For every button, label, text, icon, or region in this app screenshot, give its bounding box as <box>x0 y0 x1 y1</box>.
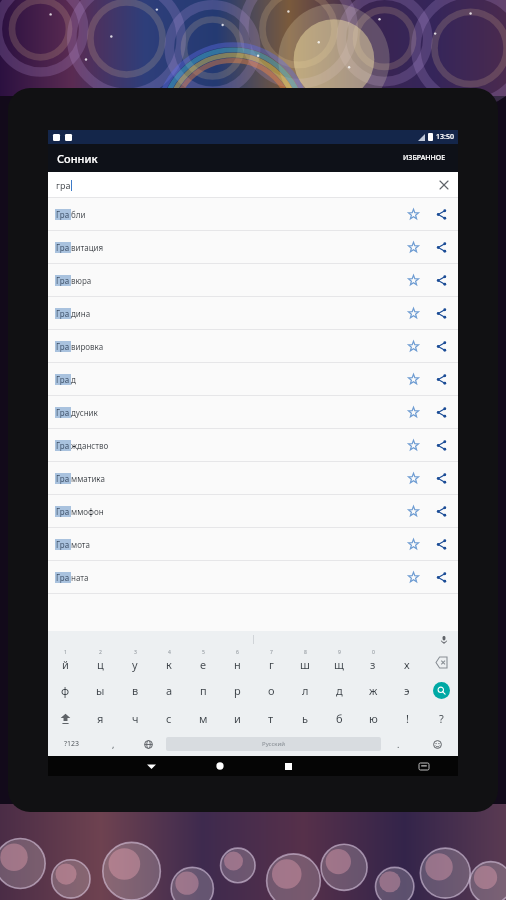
button[interactable]: л <box>288 676 322 704</box>
button[interactable]: Гра <box>48 462 458 495</box>
staticText: д <box>336 683 343 698</box>
button[interactable]: Add to favorites <box>402 302 424 324</box>
button[interactable]: ж <box>356 676 390 704</box>
button[interactable]: Share <box>430 401 452 423</box>
button[interactable]: Гра <box>48 429 458 462</box>
button[interactable]: т <box>254 704 288 732</box>
button[interactable]: Share <box>430 368 452 390</box>
button[interactable]: Share <box>430 203 452 225</box>
button[interactable]: Гра <box>48 198 458 231</box>
button[interactable]: Home <box>186 756 254 776</box>
button[interactable]: 3 <box>118 648 152 676</box>
button[interactable]: Share <box>430 335 452 357</box>
button[interactable]: Voice input <box>437 633 451 647</box>
button[interactable]: Add to favorites <box>402 203 424 225</box>
button[interactable]: . <box>381 732 416 756</box>
button[interactable]: п <box>186 676 220 704</box>
button[interactable]: Add to favorites <box>402 236 424 258</box>
button[interactable]: Add to favorites <box>402 566 424 588</box>
button[interactable]: Гра <box>48 231 458 264</box>
button[interactable]: 2 <box>83 648 118 676</box>
button[interactable]: ?123 <box>48 732 96 756</box>
button[interactable]: Change language <box>131 732 166 756</box>
button[interactable]: Add to favorites <box>402 269 424 291</box>
staticText: р <box>234 683 241 698</box>
button[interactable]: 1 <box>48 648 83 676</box>
button[interactable]: Add to favorites <box>402 401 424 423</box>
button[interactable]: э <box>390 676 424 704</box>
staticText: Сонник <box>57 151 98 166</box>
button[interactable]: Search <box>433 682 450 699</box>
button[interactable]: , <box>96 732 131 756</box>
button[interactable]: Emoji <box>416 732 458 756</box>
button[interactable]: Add to favorites <box>402 467 424 489</box>
button[interactable]: о <box>254 676 288 704</box>
staticText: . <box>397 738 400 750</box>
staticText: ф <box>61 683 70 698</box>
staticText: б <box>336 711 343 726</box>
button[interactable]: Гра <box>48 561 458 594</box>
button[interactable]: 5 <box>186 648 220 676</box>
button[interactable]: Share <box>430 269 452 291</box>
button[interactable]: ы <box>83 676 118 704</box>
staticText: Гра <box>56 374 70 385</box>
button[interactable]: и <box>220 704 254 732</box>
button[interactable]: ь <box>288 704 322 732</box>
staticText: ИЗБРАННОЕ <box>403 153 446 163</box>
button[interactable]: Share <box>430 467 452 489</box>
staticText: г <box>269 657 274 672</box>
button[interactable]: х <box>390 648 424 676</box>
button[interactable]: ч <box>118 704 152 732</box>
button[interactable]: Гра <box>48 396 458 429</box>
button[interactable]: Гра <box>48 495 458 528</box>
staticText: дусник <box>71 407 98 418</box>
button[interactable]: 0 <box>356 648 390 676</box>
button[interactable]: я <box>83 704 118 732</box>
button[interactable]: ! <box>390 704 424 732</box>
button[interactable]: Гра <box>48 297 458 330</box>
button[interactable]: 8 <box>288 648 322 676</box>
button[interactable]: Shift <box>48 704 83 732</box>
staticText: н <box>234 657 241 672</box>
staticText: 3 <box>134 649 137 656</box>
button[interactable]: Recents <box>254 756 322 776</box>
button[interactable]: 6 <box>220 648 254 676</box>
button[interactable]: Add to favorites <box>402 434 424 456</box>
staticText: 2 <box>99 649 102 656</box>
button[interactable]: 4 <box>152 648 186 676</box>
button[interactable]: б <box>322 704 356 732</box>
button[interactable]: м <box>186 704 220 732</box>
button[interactable]: д <box>322 676 356 704</box>
button[interactable]: Back <box>117 756 186 776</box>
button[interactable]: Switch keyboard <box>390 756 458 776</box>
button[interactable]: р <box>220 676 254 704</box>
staticText: п <box>200 683 207 698</box>
button[interactable]: ? <box>424 704 458 732</box>
button[interactable]: ИЗБРАННОЕ <box>400 151 449 165</box>
button[interactable]: Share <box>430 566 452 588</box>
button[interactable]: ф <box>48 676 83 704</box>
button[interactable]: Add to favorites <box>402 500 424 522</box>
button[interactable]: в <box>118 676 152 704</box>
button[interactable]: Clear search <box>436 177 452 193</box>
button[interactable]: 7 <box>254 648 288 676</box>
button[interactable]: Add to favorites <box>402 335 424 357</box>
button[interactable]: Share <box>430 302 452 324</box>
button[interactable]: Гра <box>48 528 458 561</box>
button[interactable]: а <box>152 676 186 704</box>
button[interactable]: Share <box>430 236 452 258</box>
button[interactable]: Русский <box>166 737 381 751</box>
button[interactable]: Гра <box>48 363 458 396</box>
button[interactable]: Add to favorites <box>402 368 424 390</box>
button[interactable]: Гра <box>48 264 458 297</box>
button[interactable]: Share <box>430 533 452 555</box>
button[interactable]: с <box>152 704 186 732</box>
button[interactable]: Backspace <box>424 648 458 676</box>
button[interactable]: ю <box>356 704 390 732</box>
staticText: бли <box>71 209 86 220</box>
button[interactable]: Гра <box>48 330 458 363</box>
button[interactable]: Share <box>430 434 452 456</box>
button[interactable]: Share <box>430 500 452 522</box>
button[interactable]: 9 <box>322 648 356 676</box>
button[interactable]: Add to favorites <box>402 533 424 555</box>
